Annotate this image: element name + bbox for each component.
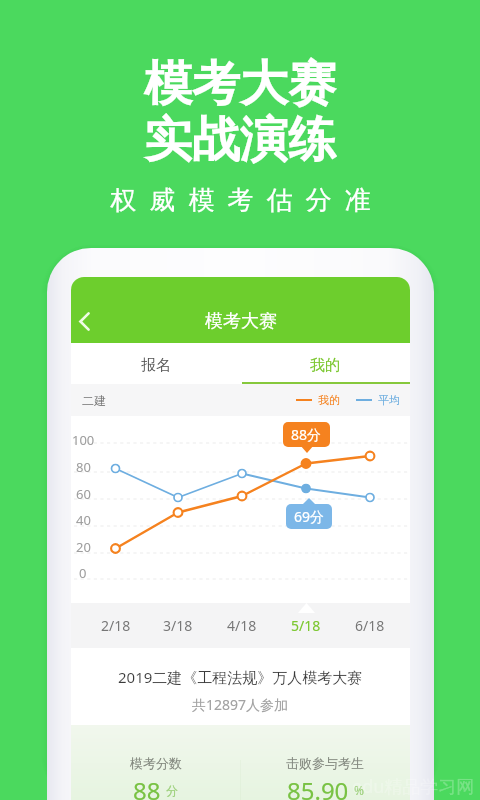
staticText: 二建	[82, 393, 106, 408]
staticText: 100	[72, 431, 95, 447]
staticText: 我的	[310, 356, 340, 375]
staticText: 实战演练	[144, 110, 336, 170]
staticText: 共12897人参加	[192, 695, 289, 714]
button[interactable]: 击败参与考生	[240, 725, 410, 800]
button[interactable]: 我的	[240, 343, 410, 384]
staticText: 5/18	[291, 616, 321, 635]
button[interactable]: Back	[71, 303, 98, 339]
button[interactable]: 模考分数	[71, 725, 240, 800]
staticText: 模考大赛	[144, 54, 336, 114]
staticText: 60	[76, 485, 91, 501]
staticText: 88	[133, 774, 161, 800]
staticText: 模考分数	[130, 755, 182, 771]
staticText: 权威模考估分准	[104, 184, 377, 217]
staticText: 6/18	[355, 616, 385, 635]
staticText: edu精品学习网	[352, 774, 475, 799]
button[interactable]: 5/18	[280, 603, 332, 648]
staticText: 85.90	[287, 774, 349, 800]
staticText: %	[354, 782, 364, 798]
staticText: 我的	[318, 393, 340, 407]
staticText: 4/18	[227, 616, 257, 635]
staticText: 2/18	[101, 616, 131, 635]
staticText: 40	[76, 511, 91, 527]
staticText: 平均	[378, 393, 400, 407]
button[interactable]: 3/18	[152, 603, 204, 648]
staticText: 击败参与考生	[286, 755, 364, 771]
staticText: 88分	[291, 425, 322, 444]
button[interactable]: 6/18	[344, 603, 396, 648]
staticText: 3/18	[163, 616, 193, 635]
staticText: 模考大赛	[205, 310, 277, 333]
staticText: 分	[166, 783, 178, 798]
staticText: 报名	[141, 356, 171, 375]
staticText: 0	[79, 564, 87, 580]
staticText: 2019二建《工程法规》万人模考大赛	[118, 667, 363, 687]
staticText: 20	[76, 538, 91, 554]
button[interactable]: 报名	[71, 343, 240, 384]
button[interactable]: 2/18	[90, 603, 142, 648]
button[interactable]: 4/18	[216, 603, 268, 648]
staticText: 69分	[294, 507, 325, 526]
staticText: 80	[76, 458, 91, 474]
